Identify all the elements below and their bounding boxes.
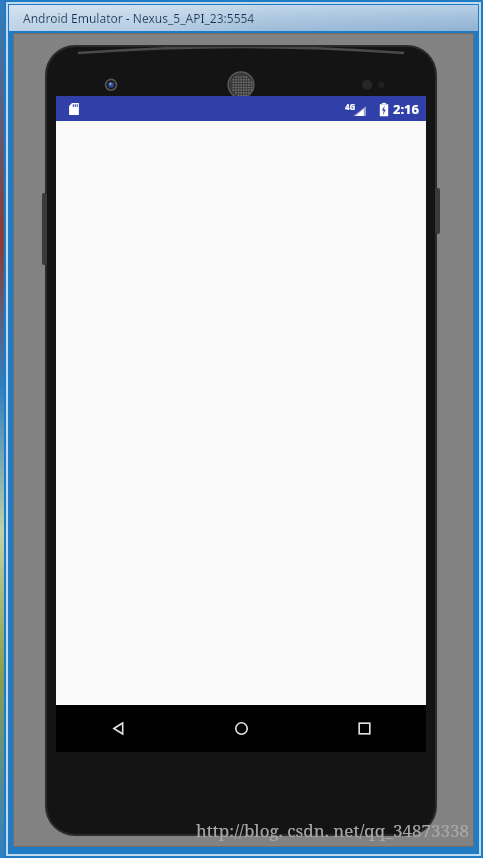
button[interactable]: Home xyxy=(180,705,303,752)
button[interactable]: Recent apps xyxy=(303,705,426,752)
staticText: 2:16 xyxy=(393,100,419,118)
button[interactable]: Back xyxy=(56,705,180,752)
staticText: http://blog. csdn. net/qq_34873338 xyxy=(196,819,469,842)
staticText: Android Emulator - Nexus_5_API_23:5554 xyxy=(23,10,255,26)
staticText: 4G xyxy=(345,101,356,112)
other: SD card notification xyxy=(67,102,81,116)
